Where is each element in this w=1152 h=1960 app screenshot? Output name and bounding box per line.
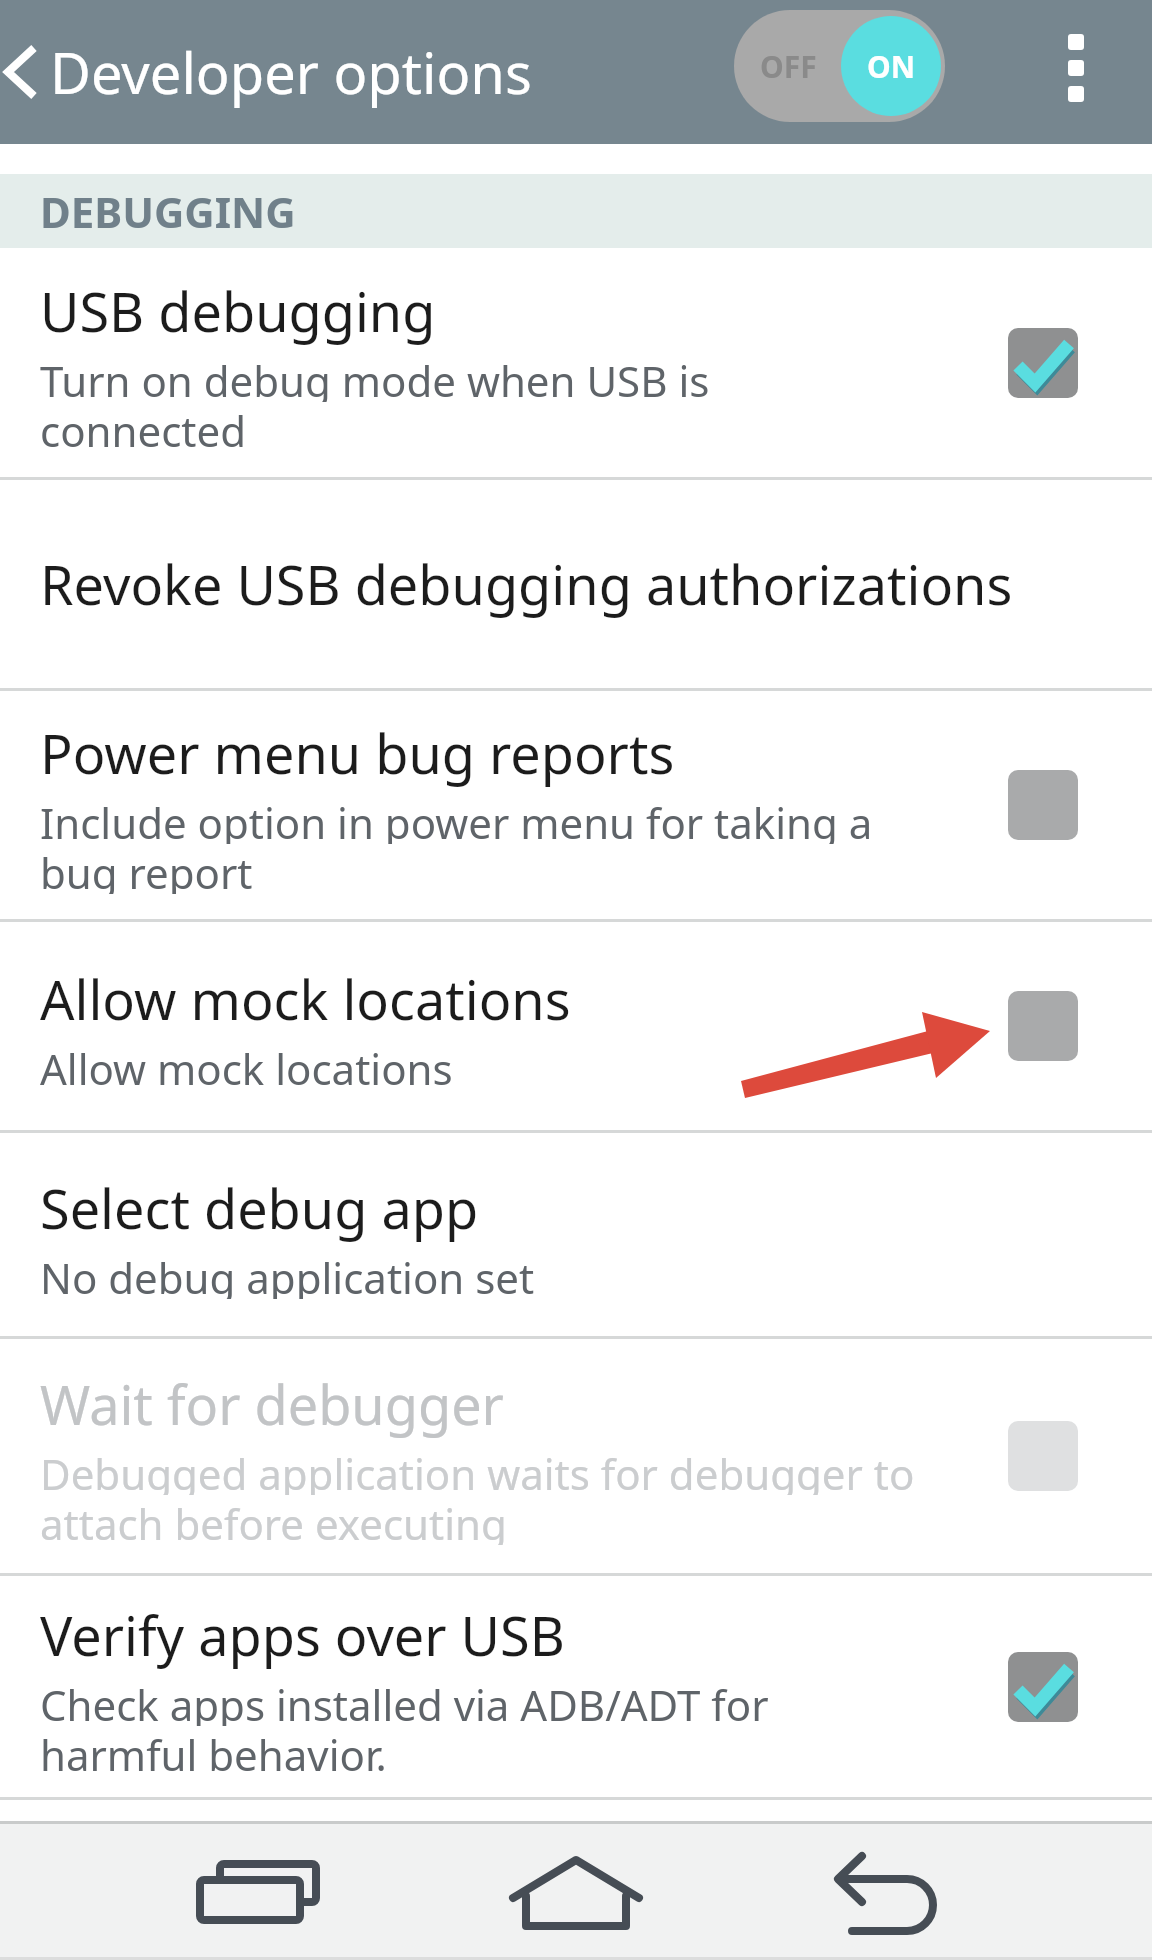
button[interactable]	[1008, 328, 1078, 398]
button[interactable]: Wait for debugger	[0, 1339, 1152, 1573]
button[interactable]	[1068, 34, 1084, 102]
staticText: bug report	[40, 844, 253, 894]
button[interactable]: Revoke USB debugging authorizations	[0, 480, 1152, 688]
staticText: Power menu bug reports	[40, 716, 675, 790]
staticText: Developer options	[50, 34, 532, 110]
button[interactable]	[1008, 1652, 1078, 1722]
staticText: Debugged application waits for debugger …	[40, 1445, 915, 1495]
button[interactable]	[1008, 770, 1078, 840]
button[interactable]: USB debugging	[0, 248, 1152, 477]
staticText: attach before executing	[40, 1495, 507, 1545]
button[interactable]: Power menu bug reports	[0, 691, 1152, 919]
staticText: ON	[867, 46, 916, 87]
staticText: Select debug app	[40, 1171, 479, 1245]
staticText: OFF	[760, 46, 817, 87]
button[interactable]: Allow mock locations	[0, 922, 1152, 1130]
staticText: Turn on debug mode when USB is	[40, 352, 710, 402]
staticText: Verify apps over USB	[40, 1598, 565, 1672]
staticText: Revoke USB debugging authorizations	[40, 547, 1013, 621]
button[interactable]	[1008, 991, 1078, 1061]
staticText: No debug application set	[40, 1249, 535, 1299]
staticText: connected	[40, 402, 247, 452]
button[interactable]: OFF	[734, 10, 945, 122]
staticText: Include option in power menu for taking …	[40, 794, 873, 844]
staticText: Allow mock locations	[40, 962, 571, 1036]
staticText: Check apps installed via ADB/ADT for	[40, 1676, 769, 1726]
button[interactable]	[1008, 1421, 1078, 1491]
staticText: USB debugging	[40, 274, 436, 348]
staticText: harmful behavior.	[40, 1726, 387, 1776]
staticText: DEBUGGING	[40, 183, 296, 240]
staticText: Allow mock locations	[40, 1040, 453, 1090]
button[interactable]: Verify apps over USB	[0, 1576, 1152, 1797]
button[interactable]	[732, 1824, 1044, 1960]
staticText: Wait for debugger	[40, 1367, 504, 1441]
button[interactable]	[108, 1824, 420, 1960]
button[interactable]: Select debug app	[0, 1133, 1152, 1336]
button[interactable]	[420, 1824, 732, 1960]
